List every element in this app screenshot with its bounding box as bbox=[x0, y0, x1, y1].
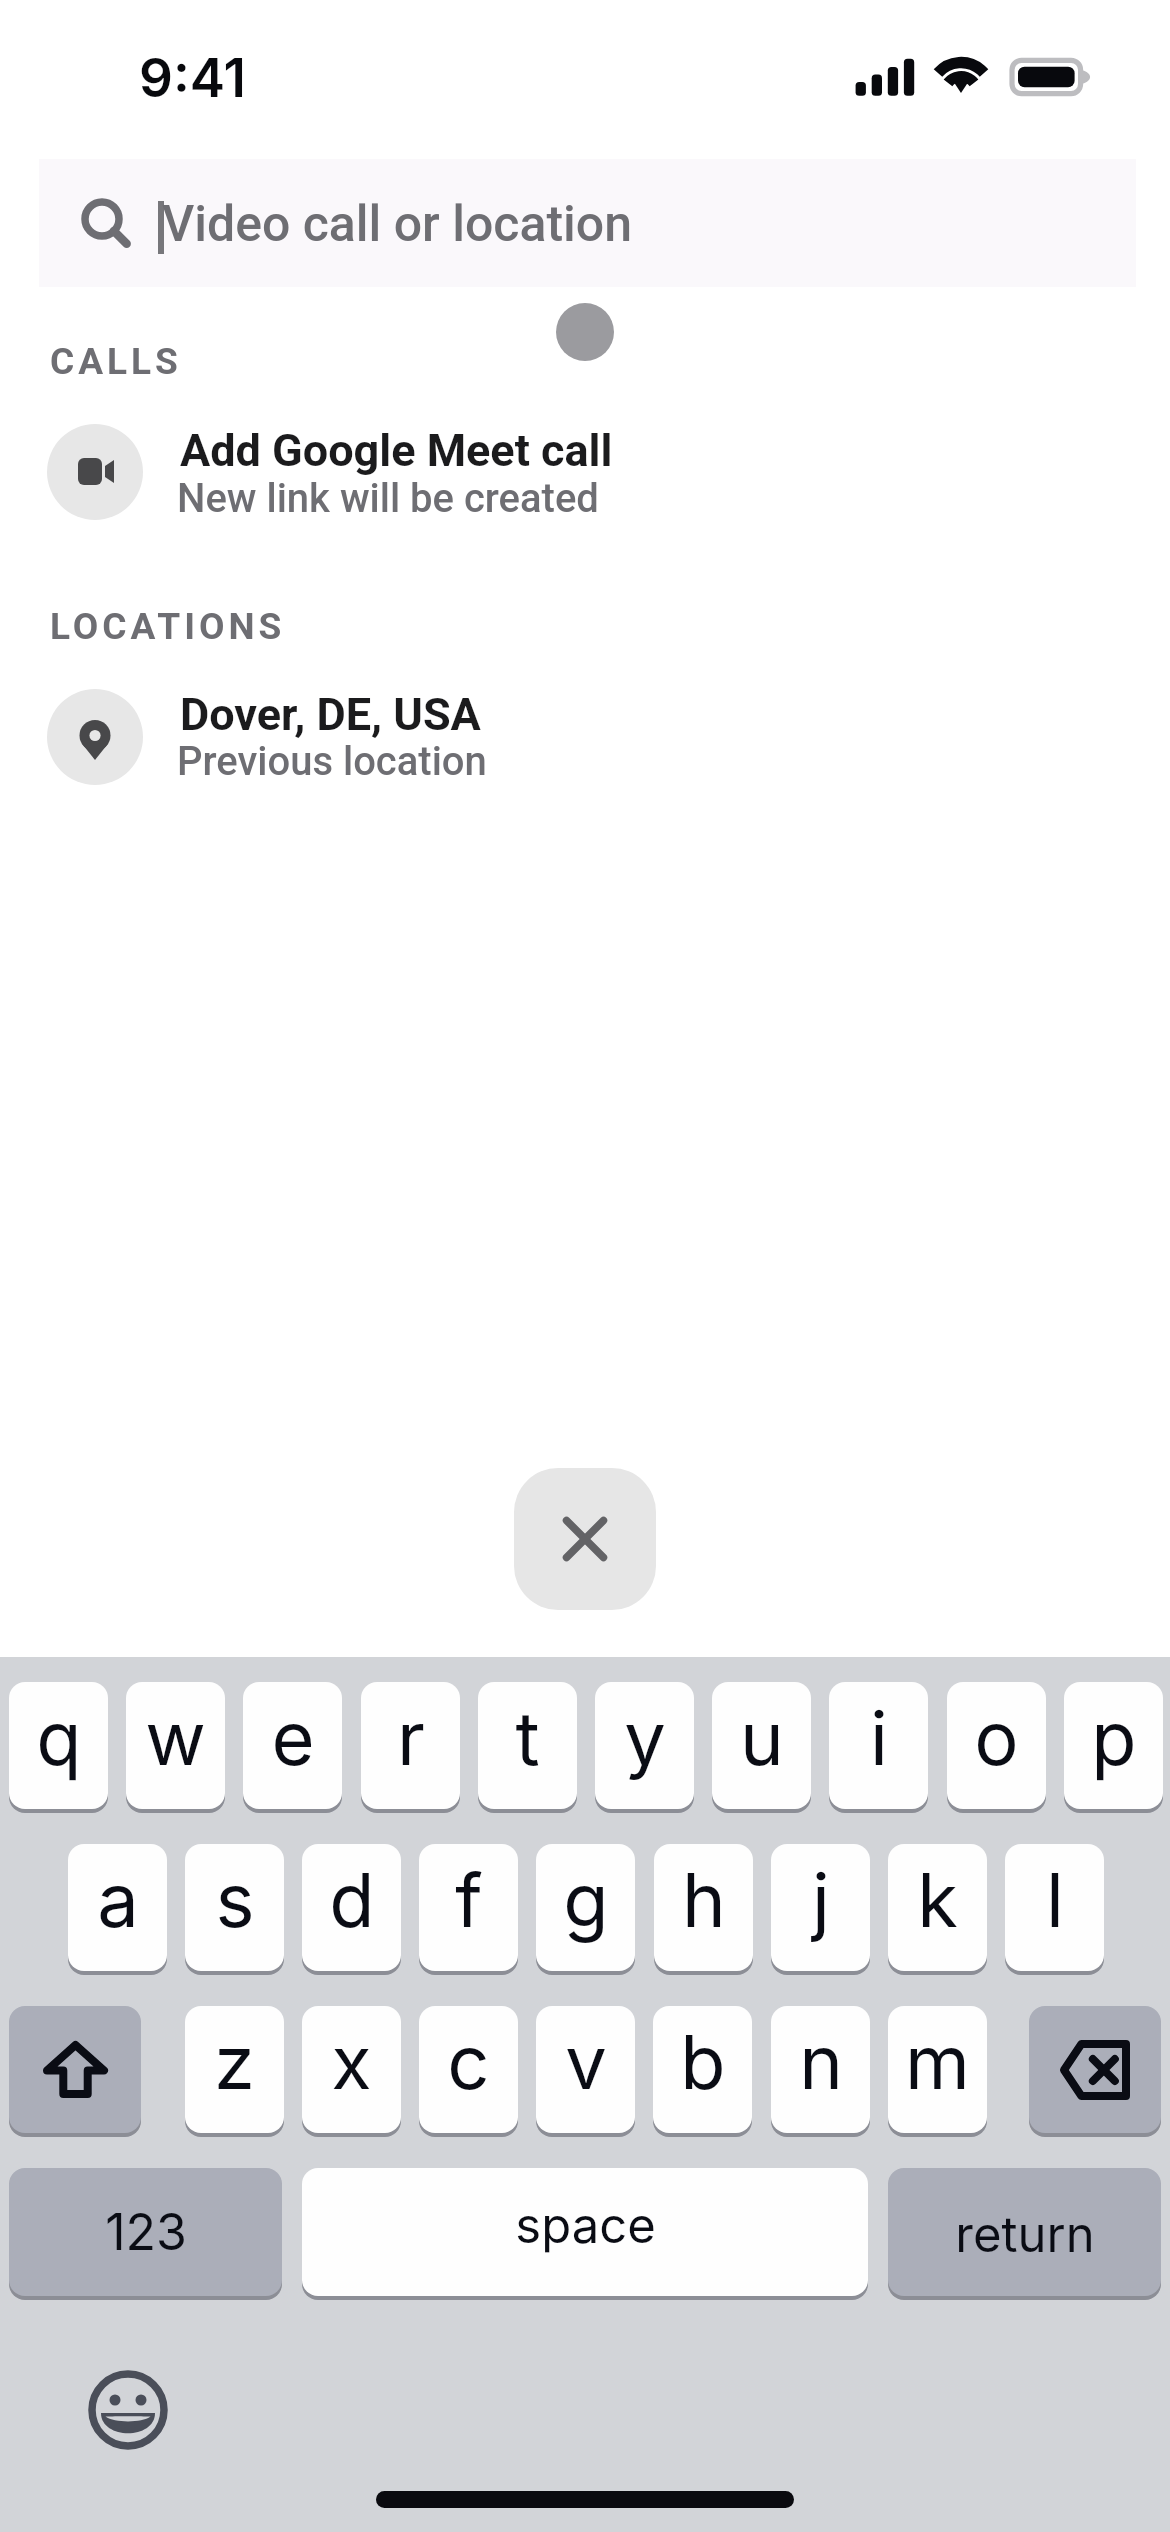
staticText: t bbox=[515, 1693, 540, 1783]
button[interactable]: Shift bbox=[9, 2006, 141, 2133]
button[interactable]: u bbox=[712, 1682, 811, 1809]
staticText: 9:41 bbox=[139, 46, 246, 110]
staticText: e bbox=[271, 1693, 315, 1783]
button[interactable]: j bbox=[771, 1844, 870, 1971]
staticText: z bbox=[214, 2017, 255, 2107]
staticText: w bbox=[145, 1693, 206, 1783]
button[interactable]: Add Google Meet call bbox=[0, 412, 1170, 532]
staticText: j bbox=[812, 1855, 830, 1945]
staticText: r bbox=[397, 1693, 425, 1783]
staticText: a bbox=[97, 1855, 139, 1945]
staticText: u bbox=[740, 1693, 784, 1783]
staticText: v bbox=[565, 2017, 607, 2107]
button[interactable]: y bbox=[595, 1682, 694, 1809]
button[interactable]: 123 bbox=[9, 2168, 282, 2296]
button[interactable]: w bbox=[126, 1682, 225, 1809]
staticText: g bbox=[563, 1855, 609, 1945]
button[interactable]: i bbox=[829, 1682, 928, 1809]
staticText: q bbox=[36, 1693, 82, 1783]
button[interactable]: p bbox=[1064, 1682, 1163, 1809]
button[interactable]: s bbox=[185, 1844, 284, 1971]
button[interactable]: v bbox=[536, 2006, 635, 2133]
button[interactable]: z bbox=[185, 2006, 284, 2133]
button[interactable]: c bbox=[419, 2006, 518, 2133]
staticText: p bbox=[1091, 1693, 1137, 1783]
button[interactable]: q bbox=[9, 1682, 108, 1809]
button[interactable]: f bbox=[419, 1844, 518, 1971]
button[interactable]: a bbox=[68, 1844, 167, 1971]
staticText: h bbox=[682, 1855, 726, 1945]
staticText: Previous location bbox=[177, 738, 487, 785]
staticText: LOCATIONS bbox=[50, 605, 286, 648]
button[interactable]: e bbox=[243, 1682, 342, 1809]
staticText: k bbox=[917, 1855, 958, 1945]
staticText: y bbox=[624, 1693, 666, 1783]
staticText: o bbox=[974, 1693, 1019, 1783]
staticText: space bbox=[515, 2196, 656, 2255]
staticText: d bbox=[329, 1855, 375, 1945]
button[interactable]: Dover, DE, USA bbox=[0, 676, 1170, 796]
staticText: c bbox=[447, 2017, 490, 2107]
staticText: New link will be created bbox=[177, 475, 599, 522]
button[interactable]: b bbox=[653, 2006, 752, 2133]
button[interactable]: Close bbox=[514, 1468, 656, 1610]
staticText: Video call or location bbox=[162, 195, 632, 254]
button[interactable]: Backspace bbox=[1029, 2006, 1161, 2133]
button[interactable]: m bbox=[888, 2006, 987, 2133]
staticText: n bbox=[799, 2017, 843, 2107]
button[interactable]: r bbox=[361, 1682, 460, 1809]
button[interactable]: Emoji keyboard bbox=[88, 2370, 168, 2450]
staticText: b bbox=[680, 2017, 726, 2107]
button[interactable]: return bbox=[888, 2168, 1161, 2296]
staticText: Dover, DE, USA bbox=[180, 688, 481, 741]
staticText: x bbox=[331, 2017, 372, 2107]
staticText: m bbox=[905, 2017, 970, 2107]
staticText: f bbox=[455, 1855, 483, 1945]
button[interactable]: d bbox=[302, 1844, 401, 1971]
button[interactable]: t bbox=[478, 1682, 577, 1809]
button[interactable]: x bbox=[302, 2006, 401, 2133]
button[interactable]: h bbox=[654, 1844, 753, 1971]
staticText: l bbox=[1046, 1855, 1064, 1945]
button[interactable]: Video call or location bbox=[39, 159, 1136, 287]
staticText: 123 bbox=[105, 2202, 187, 2262]
button[interactable]: n bbox=[771, 2006, 870, 2133]
button[interactable]: l bbox=[1005, 1844, 1104, 1971]
staticText: Add Google Meet call bbox=[180, 424, 613, 477]
staticText: i bbox=[870, 1693, 888, 1783]
button[interactable]: g bbox=[536, 1844, 635, 1971]
button[interactable]: o bbox=[947, 1682, 1046, 1809]
staticText: return bbox=[955, 2205, 1095, 2264]
staticText: CALLS bbox=[50, 340, 182, 383]
staticText: s bbox=[215, 1855, 255, 1945]
button[interactable]: k bbox=[888, 1844, 987, 1971]
button[interactable]: space bbox=[302, 2168, 868, 2296]
